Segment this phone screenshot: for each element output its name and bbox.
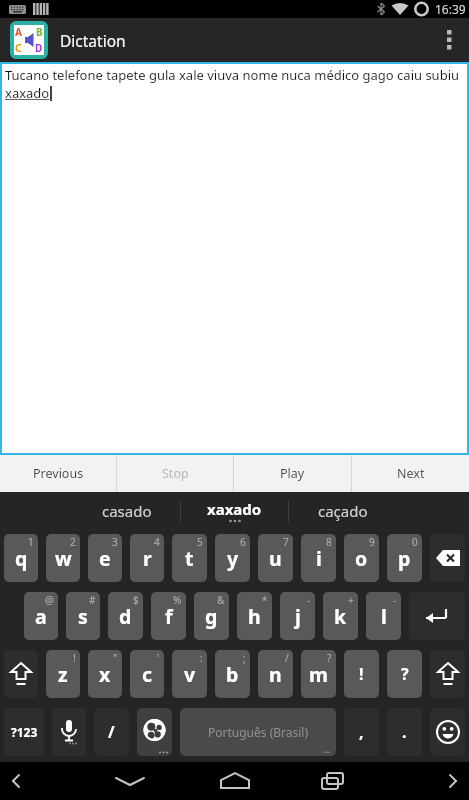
- button[interactable]: [118, 762, 235, 800]
- staticText: casado: [102, 501, 152, 521]
- button[interactable]: o: [344, 534, 379, 582]
- button[interactable]: n: [258, 650, 293, 698]
- button[interactable]: y: [215, 534, 250, 582]
- staticText: d: [119, 603, 132, 630]
- button[interactable]: /: [94, 708, 129, 756]
- staticText: 8: [326, 535, 332, 549]
- button[interactable]: [430, 708, 465, 756]
- staticText: A: [15, 25, 22, 39]
- button[interactable]: d: [108, 592, 143, 640]
- button[interactable]: [430, 534, 465, 582]
- button[interactable]: s: [66, 592, 100, 640]
- staticText: -: [307, 593, 311, 607]
- staticText: 16:39: [435, 1, 466, 17]
- staticText: s: [78, 603, 88, 630]
- button[interactable]: i: [301, 534, 336, 582]
- button[interactable]: f: [151, 592, 186, 640]
- button[interactable]: u: [258, 534, 293, 582]
- button[interactable]: ?123: [4, 708, 44, 756]
- staticText: k: [334, 603, 347, 630]
- button[interactable]: [352, 762, 469, 800]
- button[interactable]: z: [46, 650, 80, 698]
- staticText: @: [45, 593, 54, 607]
- staticText: ,: [359, 721, 364, 743]
- button[interactable]: Português (Brasil): [180, 708, 336, 756]
- staticText: a: [35, 603, 47, 630]
- button[interactable]: Stop: [117, 455, 233, 492]
- button[interactable]: xaxado: [181, 492, 288, 529]
- button[interactable]: e: [88, 534, 122, 582]
- staticText: :: [200, 651, 203, 665]
- staticText: l: [381, 603, 387, 630]
- staticText: h: [248, 603, 261, 630]
- button[interactable]: [429, 18, 469, 62]
- button[interactable]: ,: [344, 708, 379, 756]
- button[interactable]: l: [366, 592, 401, 640]
- staticText: #: [89, 593, 96, 607]
- button[interactable]: caçado: [289, 492, 396, 529]
- staticText: y: [227, 545, 239, 572]
- button[interactable]: a: [24, 592, 58, 640]
- staticText: !: [359, 663, 364, 685]
- staticText: Tucano telefone tapete gula xale viuva n…: [5, 66, 460, 84]
- button[interactable]: [409, 592, 465, 640]
- staticText: x: [99, 661, 111, 688]
- staticText: ?123: [11, 724, 38, 740]
- staticText: q: [15, 545, 28, 572]
- button[interactable]: .: [387, 708, 422, 756]
- button[interactable]: [430, 650, 465, 698]
- button[interactable]: c: [130, 650, 164, 698]
- button[interactable]: b: [215, 650, 250, 698]
- staticText: Dictation: [60, 30, 126, 51]
- button[interactable]: Tucano telefone tapete gula xale viuva n…: [0, 62, 469, 455]
- button[interactable]: g: [194, 592, 229, 640]
- staticText: o: [355, 545, 368, 572]
- button[interactable]: [235, 762, 352, 800]
- staticText: B: [36, 25, 43, 39]
- button[interactable]: Play: [234, 455, 351, 492]
- staticText: /: [108, 721, 115, 743]
- staticText: .: [402, 721, 407, 743]
- button[interactable]: m: [301, 650, 336, 698]
- staticText: xaxado: [207, 499, 262, 519]
- staticText: z: [58, 661, 68, 688]
- staticText: Next: [397, 465, 425, 482]
- button[interactable]: j: [280, 592, 315, 640]
- button[interactable]: v: [172, 650, 207, 698]
- button[interactable]: casado: [73, 492, 180, 529]
- staticText: +: [348, 593, 354, 607]
- button[interactable]: q: [4, 534, 38, 582]
- button[interactable]: [137, 708, 172, 756]
- button[interactable]: p: [387, 534, 422, 582]
- staticText: &: [217, 593, 225, 607]
- button[interactable]: ?: [387, 650, 422, 698]
- button[interactable]: !: [344, 650, 379, 698]
- staticText: u: [269, 545, 282, 572]
- staticText: 2: [70, 535, 76, 549]
- staticText: *: [262, 593, 268, 607]
- staticText: w: [55, 545, 72, 572]
- staticText: j: [295, 603, 301, 630]
- button[interactable]: [4, 650, 38, 698]
- button[interactable]: w: [46, 534, 80, 582]
- staticText: 0: [412, 535, 418, 549]
- staticText: r: [143, 545, 152, 572]
- button[interactable]: x: [88, 650, 122, 698]
- staticText: !: [73, 651, 76, 665]
- staticText: ;: [243, 651, 246, 665]
- button[interactable]: [52, 708, 86, 756]
- button[interactable]: t: [172, 534, 207, 582]
- staticText: 1: [28, 535, 34, 549]
- button[interactable]: Next: [352, 455, 469, 492]
- button[interactable]: [0, 762, 118, 800]
- button[interactable]: r: [130, 534, 164, 582]
- staticText: ': [157, 651, 160, 665]
- button[interactable]: h: [237, 592, 272, 640]
- staticText: f: [165, 603, 173, 630]
- staticText: ...: [323, 743, 331, 755]
- staticText: -: [393, 593, 397, 607]
- button[interactable]: k: [323, 592, 358, 640]
- staticText: g: [205, 603, 218, 630]
- staticText: 5: [197, 535, 203, 549]
- button[interactable]: Previous: [0, 455, 116, 492]
